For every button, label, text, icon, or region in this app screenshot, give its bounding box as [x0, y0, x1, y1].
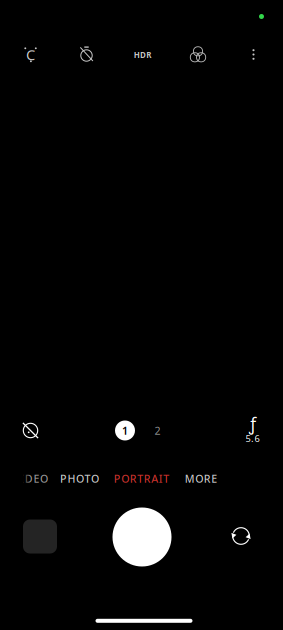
button[interactable]: HDR — [120, 38, 164, 72]
button[interactable]: Aperture — [232, 414, 272, 446]
button[interactable]: Take photo — [112, 507, 171, 566]
button[interactable]: PHOTO — [53, 467, 105, 489]
staticText: C — [26, 45, 35, 64]
button[interactable]: Photo library — [23, 519, 57, 553]
button[interactable]: PORTRAIT — [105, 467, 177, 489]
button[interactable]: VIDEO — [0, 467, 48, 489]
button[interactable]: Scene detection — [8, 37, 52, 71]
staticText: ƒ — [249, 412, 256, 435]
button[interactable]: Switch camera — [224, 519, 258, 553]
button[interactable]: More options — [231, 37, 275, 71]
button[interactable]: Night mode off — [13, 414, 47, 446]
staticText: HDR — [134, 50, 151, 60]
staticText: MORE — [185, 471, 217, 486]
button[interactable]: Timer off — [64, 37, 108, 71]
staticText: 5.6 — [245, 432, 260, 445]
button[interactable]: 1x zoom — [112, 417, 138, 443]
staticText: PHOTO — [60, 471, 99, 486]
staticText: VIDEO — [13, 471, 48, 486]
button[interactable]: 2x zoom — [146, 419, 168, 441]
button[interactable]: MORE — [178, 467, 224, 489]
staticText: 2 — [154, 423, 160, 438]
staticText: PORTRAIT — [114, 471, 169, 486]
staticText: 1 — [122, 423, 128, 438]
button[interactable]: Filters — [176, 37, 220, 71]
